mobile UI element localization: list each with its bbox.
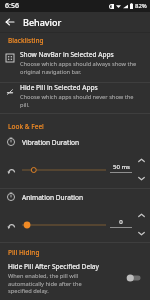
staticText: Animation Duration xyxy=(22,193,84,202)
staticText: Vibration Duration xyxy=(22,138,80,147)
staticText: When enabled, the pill will automaticall… xyxy=(8,272,82,294)
staticText: Look & Feel xyxy=(8,122,44,131)
button[interactable]: Reset xyxy=(0,159,22,181)
button[interactable]: Hide Pill in Selected Apps xyxy=(0,81,150,108)
staticText: Pill Hiding xyxy=(8,248,40,257)
button[interactable]: Back xyxy=(0,12,20,32)
staticText: Show NavBar in Selected Apps xyxy=(20,50,114,59)
staticText: Hide Pill After Specified Delay xyxy=(8,262,99,271)
button[interactable]: Reset xyxy=(0,214,22,236)
staticText: 82% xyxy=(135,2,147,10)
staticText: 0 xyxy=(119,218,123,226)
staticText: Hide Pill in Selected Apps xyxy=(20,83,98,92)
button[interactable]: Hide pill after specified delay toggle xyxy=(123,269,145,287)
staticText: 6:56 xyxy=(5,1,19,11)
button[interactable]: Show NavBar in Selected Apps xyxy=(0,48,150,75)
staticText: Blacklisting xyxy=(8,36,44,45)
button[interactable]: Increase xyxy=(134,153,148,167)
button[interactable]: Hide Pill After Specified Delay xyxy=(0,262,150,294)
staticText: Choose which apps should always show the… xyxy=(20,60,137,75)
button[interactable]: Decrease xyxy=(134,226,148,240)
staticText: Choose which apps should never show the … xyxy=(20,93,134,108)
button[interactable]: Increase xyxy=(134,208,148,222)
staticText: 50 ms xyxy=(113,163,130,171)
button[interactable]: Decrease xyxy=(134,171,148,185)
staticText: Behavior xyxy=(23,16,62,28)
